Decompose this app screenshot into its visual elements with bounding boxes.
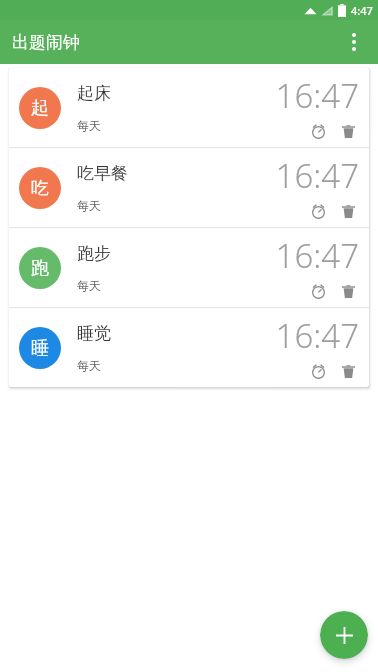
staticText: 吃早餐 (77, 163, 128, 184)
staticText: 16:47 (275, 313, 359, 358)
staticText: 每天 (77, 278, 101, 293)
staticText: 起 (31, 97, 49, 120)
staticText: 出题闹钟 (12, 32, 80, 53)
staticText: 16:47 (275, 153, 359, 198)
staticText: 每天 (77, 358, 101, 373)
staticText: 吃 (31, 177, 49, 200)
staticText: 4:47 (351, 3, 373, 18)
button[interactable]: Delete alarm (337, 120, 359, 142)
button[interactable]: More options (336, 24, 372, 60)
staticText: 跑 (31, 257, 49, 280)
button[interactable]: Delete alarm (337, 200, 359, 222)
staticText: 每天 (77, 118, 101, 133)
button[interactable]: Delete alarm (337, 360, 359, 382)
button[interactable]: 跑 (9, 228, 369, 307)
button[interactable]: Toggle alarm (307, 280, 329, 302)
button[interactable]: Toggle alarm (307, 360, 329, 382)
button[interactable]: Add alarm (320, 611, 368, 659)
staticText: 16:47 (275, 73, 359, 118)
button[interactable]: 起 (9, 68, 369, 147)
staticText: 睡觉 (77, 323, 111, 344)
button[interactable]: Toggle alarm (307, 120, 329, 142)
button[interactable]: 吃 (9, 148, 369, 227)
staticText: 每天 (77, 198, 101, 213)
staticText: 跑步 (77, 243, 111, 264)
staticText: 睡 (31, 337, 49, 360)
button[interactable]: Toggle alarm (307, 200, 329, 222)
button[interactable]: 睡 (9, 308, 369, 387)
staticText: 16:47 (275, 233, 359, 278)
staticText: 起床 (77, 83, 111, 104)
button[interactable]: Delete alarm (337, 280, 359, 302)
